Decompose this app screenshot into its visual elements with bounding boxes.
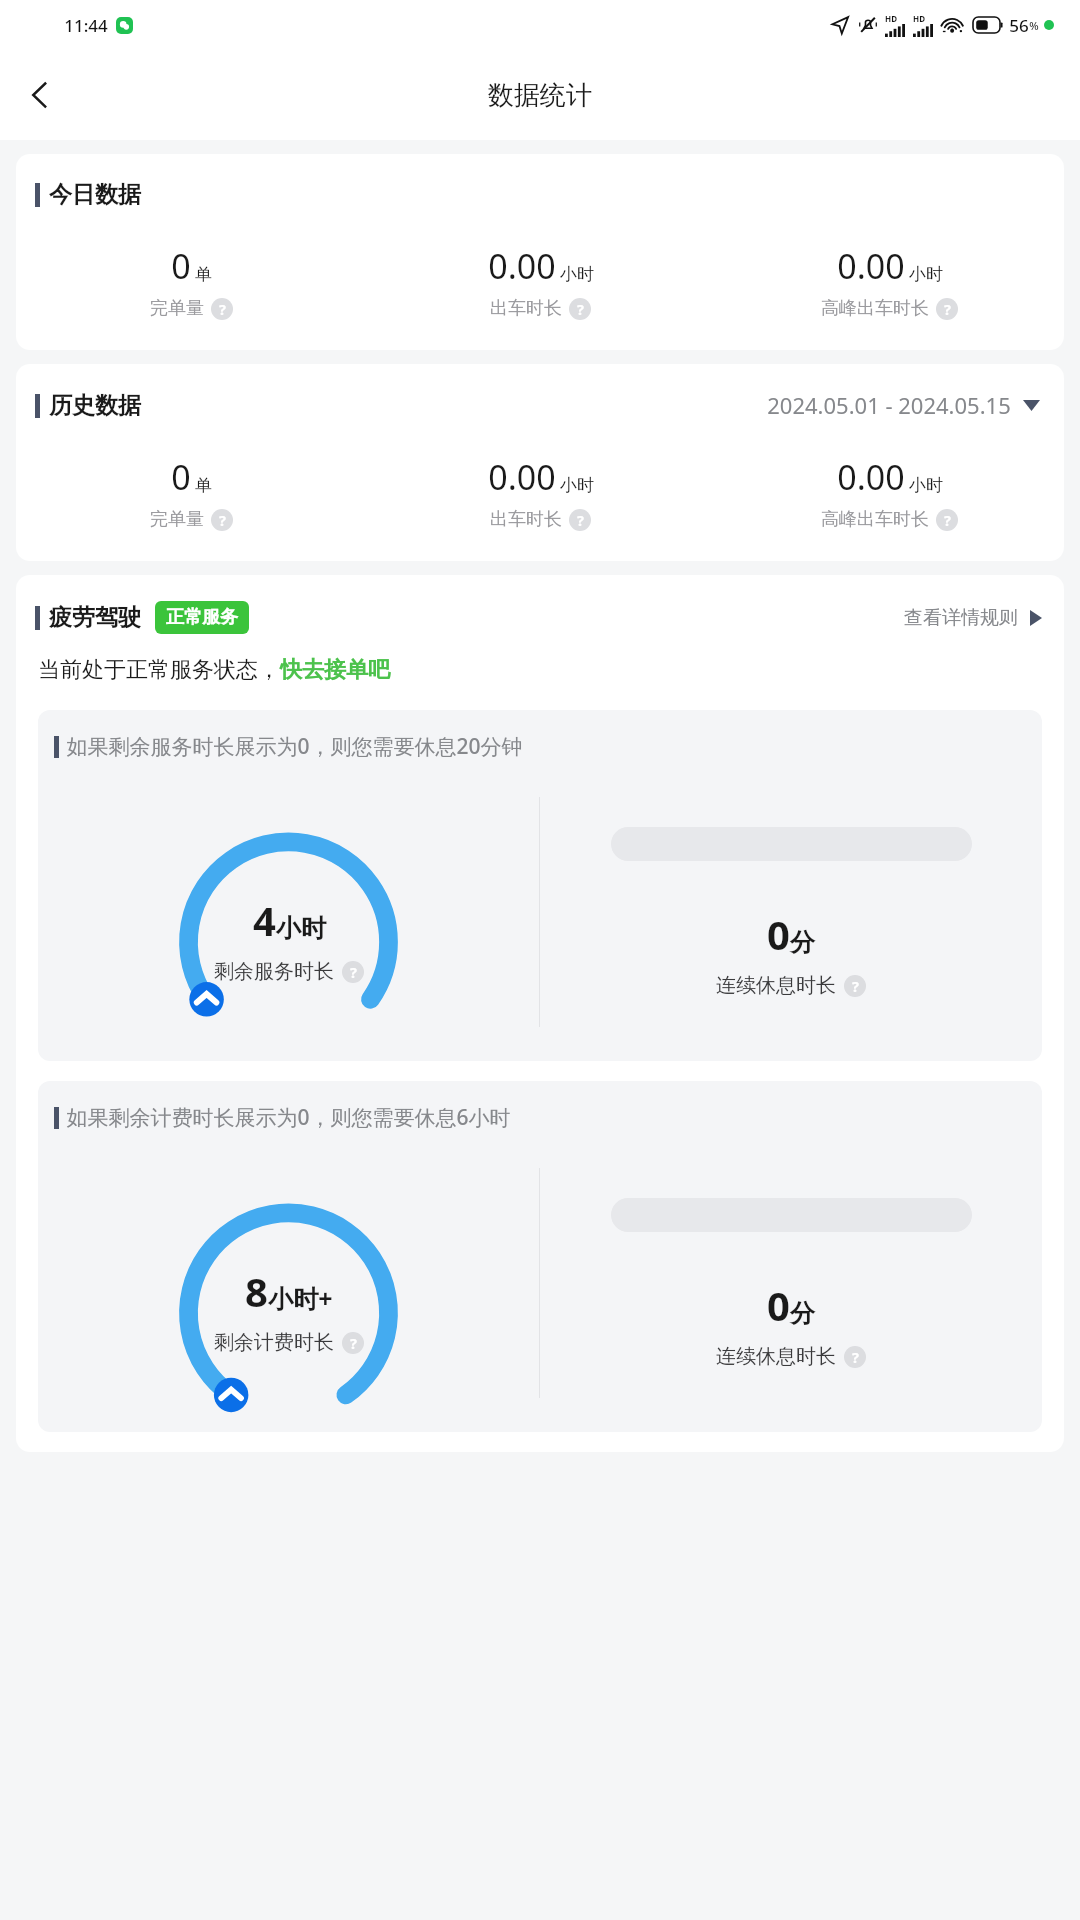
staticText: 分 bbox=[790, 1298, 815, 1329]
staticText: 分 bbox=[790, 927, 815, 958]
staticText: 疲劳驾驶 bbox=[49, 603, 141, 632]
staticText: 0.00 bbox=[488, 454, 556, 500]
staticText: 数据统计 bbox=[488, 79, 592, 112]
button[interactable]: 说明 bbox=[569, 298, 591, 320]
staticText: 正常服务 bbox=[166, 606, 238, 629]
staticText: 快去接单吧 bbox=[280, 656, 390, 684]
staticText: 0.00 bbox=[837, 243, 905, 289]
staticText: 高峰出车时长 bbox=[821, 297, 929, 320]
staticText: 56 bbox=[1009, 14, 1029, 37]
button[interactable]: 2024.05.01 - 2024.05.15 bbox=[767, 390, 1040, 420]
button[interactable]: 说明 bbox=[936, 509, 958, 531]
staticText: 小时 bbox=[909, 264, 943, 285]
button[interactable]: 说明 bbox=[844, 1346, 866, 1368]
button[interactable]: 查看详情规则 bbox=[904, 606, 1042, 630]
staticText: 今日数据 bbox=[49, 180, 141, 209]
staticText: 0 bbox=[767, 1278, 790, 1332]
staticText: 如果剩余服务时长展示为0，则您需要休息20分钟 bbox=[66, 732, 523, 761]
button[interactable]: 说明 bbox=[936, 298, 958, 320]
button[interactable]: 说明 bbox=[844, 975, 866, 997]
button[interactable]: 说明 bbox=[211, 509, 233, 531]
staticText: ? bbox=[219, 299, 226, 319]
button[interactable]: Back bbox=[12, 67, 68, 123]
staticText: 单 bbox=[195, 264, 212, 285]
staticText: 单 bbox=[195, 475, 212, 496]
staticText: 出车时长 bbox=[490, 297, 562, 320]
staticText: 8 bbox=[245, 1264, 268, 1318]
staticText: ? bbox=[852, 1347, 859, 1367]
staticText: 2024.05.01 - 2024.05.15 bbox=[767, 390, 1011, 420]
staticText: ? bbox=[577, 510, 584, 530]
staticText: 小时 bbox=[560, 475, 594, 496]
button[interactable]: 说明 bbox=[342, 961, 364, 983]
button[interactable]: 说明 bbox=[569, 509, 591, 531]
staticText: 当前处于正常服务状态， bbox=[38, 656, 280, 684]
staticText: 查看详情规则 bbox=[904, 606, 1018, 630]
staticText: 0 bbox=[171, 454, 191, 500]
staticText: % bbox=[1029, 18, 1039, 33]
button[interactable]: 说明 bbox=[211, 298, 233, 320]
staticText: 4 bbox=[253, 893, 276, 947]
staticText: 连续休息时长 bbox=[716, 973, 836, 998]
staticText: 剩余计费时长 bbox=[214, 1330, 334, 1355]
staticText: 剩余服务时长 bbox=[214, 959, 334, 984]
staticText: ? bbox=[852, 976, 859, 996]
staticText: 11:44 bbox=[64, 14, 108, 37]
staticText: 小时+ bbox=[268, 1281, 333, 1315]
staticText: 0 bbox=[171, 243, 191, 289]
staticText: ? bbox=[944, 299, 951, 319]
staticText: 出车时长 bbox=[490, 508, 562, 531]
staticText: 连续休息时长 bbox=[716, 1344, 836, 1369]
staticText: 0 bbox=[767, 907, 790, 961]
staticText: ? bbox=[350, 1333, 357, 1353]
staticText: 完单量 bbox=[150, 297, 204, 320]
staticText: ? bbox=[944, 510, 951, 530]
button[interactable]: 说明 bbox=[342, 1332, 364, 1354]
staticText: 如果剩余计费时长展示为0，则您需要休息6小时 bbox=[66, 1103, 511, 1132]
staticText: ? bbox=[577, 299, 584, 319]
staticText: ? bbox=[350, 962, 357, 982]
staticText: 小时 bbox=[909, 475, 943, 496]
staticText: 小时 bbox=[276, 913, 326, 944]
staticText: 历史数据 bbox=[49, 391, 141, 420]
staticText: HD bbox=[885, 13, 897, 24]
staticText: 小时 bbox=[560, 264, 594, 285]
staticText: 高峰出车时长 bbox=[821, 508, 929, 531]
staticText: 0.00 bbox=[837, 454, 905, 500]
staticText: ? bbox=[219, 510, 226, 530]
staticText: 0.00 bbox=[488, 243, 556, 289]
staticText: HD bbox=[913, 13, 925, 24]
staticText: 完单量 bbox=[150, 508, 204, 531]
